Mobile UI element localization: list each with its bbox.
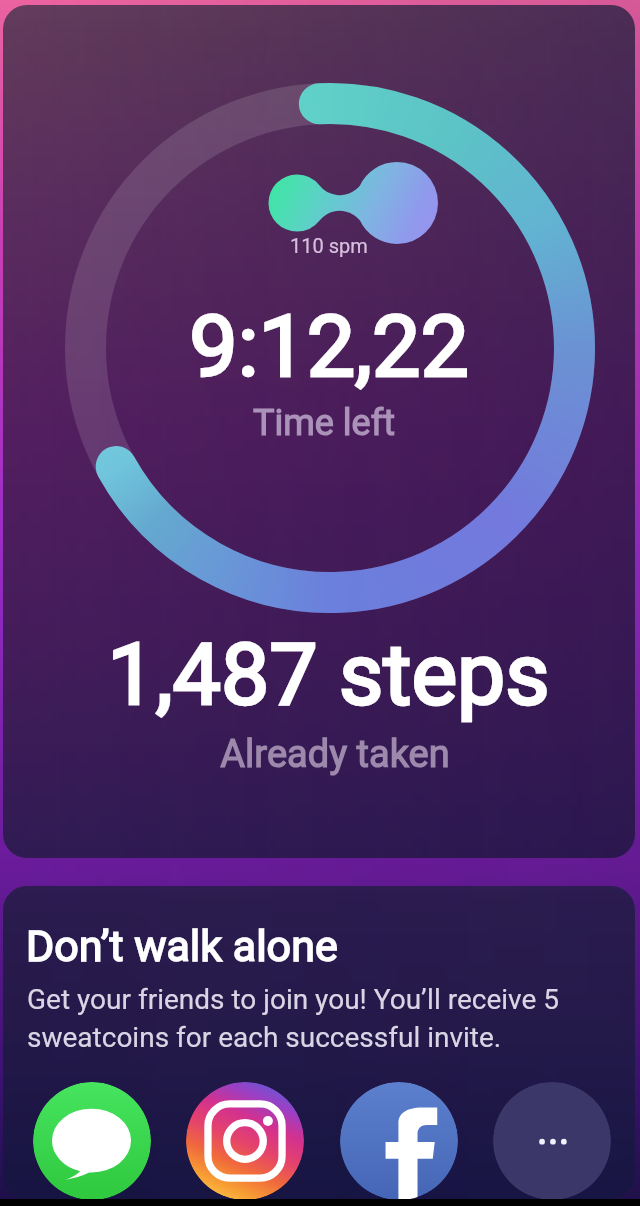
staticText: Don’t walk alone: [26, 921, 338, 971]
staticText: 1,487 steps: [107, 624, 550, 725]
staticText: Already taken: [220, 732, 450, 777]
button[interactable]: Share via Messages: [33, 1082, 151, 1199]
staticText: Time left: [253, 402, 395, 444]
button[interactable]: Share on Facebook: [340, 1082, 458, 1199]
staticText: Get your friends to join you! You’ll rec…: [27, 983, 607, 1199]
button[interactable]: 110 spm: [3, 5, 635, 858]
staticText: 9:12,22: [189, 296, 469, 397]
button[interactable]: More sharing options: [493, 1082, 611, 1199]
button[interactable]: Share on Instagram: [186, 1082, 304, 1199]
staticText: 110 spm: [290, 234, 368, 257]
